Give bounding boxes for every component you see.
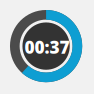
button[interactable]: Timer 00:37 [0,0,94,94]
staticText: 00:37 [24,35,69,58]
